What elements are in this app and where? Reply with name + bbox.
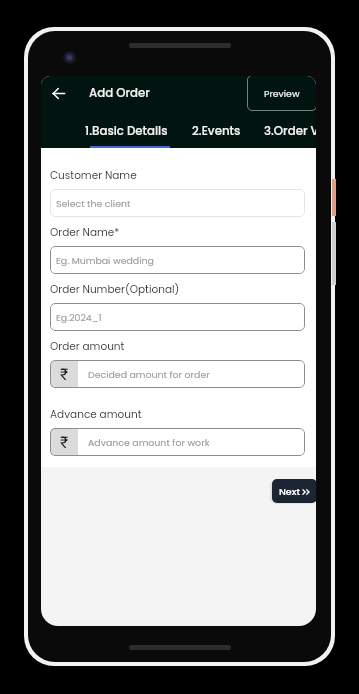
staticText: ₹ [60,433,69,452]
button[interactable]: Eg. Mumbai wedding [50,246,305,274]
button[interactable]: 3.Order Value [264,120,316,142]
staticText: Select the client [56,197,131,210]
staticText: Order Number(Optional) [50,282,180,297]
staticText: Decided amount for order [88,368,210,381]
button[interactable]: Next [272,479,316,503]
staticText: ₹ [60,365,69,384]
button[interactable]: ₹ [50,428,305,456]
staticText: 1.Basic Details [85,123,168,140]
staticText: Advance amount [50,407,142,422]
staticText: 3.Order Value [264,123,316,140]
button[interactable]: Select the client [50,189,305,217]
staticText: Customer Name [50,168,137,183]
button[interactable]: 1.Basic Details [85,120,168,142]
staticText: Eg. Mumbai wedding [56,254,154,267]
button[interactable]: Eg.2024_1 [50,303,305,331]
staticText: Next [279,485,300,498]
staticText: Eg.2024_1 [56,311,102,324]
staticText: Advance amount for work [88,436,210,449]
staticText: Add Order [89,85,150,102]
staticText: Order amount [50,339,125,354]
button[interactable]: Preview [247,76,316,111]
button[interactable]: ₹ [50,360,305,388]
staticText: Order Name* [50,225,120,240]
button[interactable]: 2.Events [192,120,241,142]
staticText: Preview [264,87,300,100]
staticText: 2.Events [192,123,241,140]
button[interactable]: Back [47,82,69,104]
